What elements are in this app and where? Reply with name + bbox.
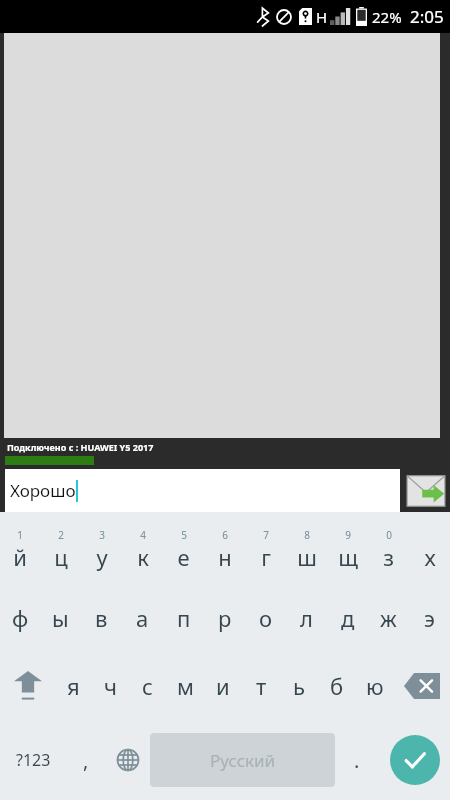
- button[interactable]: .: [335, 720, 379, 800]
- button[interactable]: Русский: [150, 733, 335, 787]
- button[interactable]: п: [163, 584, 204, 652]
- button[interactable]: а: [122, 584, 163, 652]
- staticText: 5: [181, 528, 187, 542]
- staticText: п: [177, 603, 191, 633]
- staticText: о: [259, 603, 273, 633]
- button[interactable]: м: [166, 652, 204, 720]
- button[interactable]: ж: [368, 584, 409, 652]
- staticText: 2:05: [410, 5, 444, 28]
- button[interactable]: 9: [327, 512, 368, 584]
- staticText: ?123: [16, 749, 51, 771]
- staticText: Русский: [210, 749, 276, 772]
- staticText: ц: [54, 542, 68, 572]
- button[interactable]: 5: [163, 512, 204, 584]
- button[interactable]: Shift: [0, 652, 55, 720]
- staticText: в: [95, 603, 108, 633]
- button[interactable]: 4: [122, 512, 163, 584]
- button[interactable]: э: [409, 584, 450, 652]
- staticText: 9: [345, 528, 351, 542]
- button[interactable]: Send: [402, 470, 450, 512]
- staticText: ч: [104, 671, 117, 701]
- button[interactable]: Enter: [379, 720, 450, 800]
- staticText: л: [300, 603, 313, 633]
- button[interactable]: 2: [40, 512, 81, 584]
- button[interactable]: ы: [40, 584, 81, 652]
- button[interactable]: р: [204, 584, 245, 652]
- staticText: э: [424, 603, 435, 633]
- button[interactable]: 7: [245, 512, 286, 584]
- staticText: с: [142, 671, 153, 701]
- staticText: г: [261, 542, 271, 572]
- staticText: х: [424, 542, 436, 572]
- button[interactable]: я: [55, 652, 92, 720]
- staticText: у: [96, 542, 108, 572]
- button[interactable]: 6: [204, 512, 245, 584]
- button[interactable]: ,: [66, 720, 106, 800]
- button[interactable]: ч: [92, 652, 129, 720]
- button[interactable]: в: [81, 584, 122, 652]
- staticText: ш: [297, 542, 317, 572]
- staticText: ю: [366, 671, 384, 701]
- staticText: е: [177, 542, 190, 572]
- staticText: д: [341, 603, 355, 633]
- staticText: 1: [17, 528, 23, 542]
- button[interactable]: 3: [81, 512, 122, 584]
- button[interactable]: б: [318, 652, 356, 720]
- button[interactable]: д: [327, 584, 368, 652]
- staticText: ы: [52, 603, 69, 633]
- staticText: 22%: [372, 7, 402, 27]
- staticText: 0: [386, 528, 392, 542]
- button[interactable]: Change language: [106, 720, 150, 800]
- staticText: ,: [83, 747, 89, 774]
- staticText: 7: [263, 528, 269, 542]
- button[interactable]: Хорошо: [5, 469, 400, 512]
- button[interactable]: л: [286, 584, 327, 652]
- button[interactable]: ?123: [0, 720, 66, 800]
- staticText: ж: [380, 603, 397, 633]
- staticText: р: [218, 603, 232, 633]
- staticText: б: [330, 671, 344, 701]
- button[interactable]: с: [129, 652, 166, 720]
- staticText: н: [218, 542, 232, 572]
- button[interactable]: ф: [0, 584, 40, 652]
- staticText: а: [136, 603, 149, 633]
- button[interactable]: ь: [280, 652, 318, 720]
- staticText: 6: [222, 528, 228, 542]
- staticText: т: [256, 671, 267, 701]
- button[interactable]: 1: [0, 512, 40, 584]
- staticText: щ: [338, 542, 358, 572]
- staticText: м: [177, 671, 194, 701]
- staticText: 3: [99, 528, 105, 542]
- staticText: Хорошо: [10, 479, 76, 502]
- staticText: з: [383, 542, 394, 572]
- staticText: к: [137, 542, 149, 572]
- staticText: ь: [293, 671, 305, 701]
- button[interactable]: 0: [368, 512, 409, 584]
- button[interactable]: т: [242, 652, 280, 720]
- staticText: ф: [12, 603, 29, 633]
- button[interactable]: ю: [356, 652, 394, 720]
- button[interactable]: х: [409, 512, 450, 584]
- staticText: и: [216, 671, 230, 701]
- staticText: я: [67, 671, 80, 701]
- staticText: .: [354, 747, 360, 774]
- button[interactable]: и: [204, 652, 242, 720]
- button[interactable]: Backspace: [394, 652, 450, 720]
- staticText: й: [13, 542, 27, 572]
- staticText: 4: [140, 528, 146, 542]
- staticText: H: [316, 7, 328, 27]
- staticText: 8: [304, 528, 310, 542]
- button[interactable]: о: [245, 584, 286, 652]
- staticText: Подключено с : HUAWEI Y5 2017: [7, 441, 154, 453]
- button[interactable]: 8: [286, 512, 327, 584]
- staticText: 2: [58, 528, 64, 542]
